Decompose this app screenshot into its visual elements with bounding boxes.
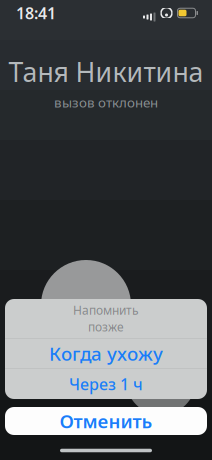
staticText: вызов отклонен <box>54 93 158 111</box>
staticText: позже <box>88 319 124 335</box>
staticText: 18:41 <box>16 2 56 24</box>
button[interactable]: Отменить <box>5 407 207 435</box>
button[interactable]: Когда ухожу <box>5 338 207 368</box>
staticText: Когда ухожу <box>49 341 163 366</box>
button[interactable]: Через 1 ч <box>5 369 207 399</box>
staticText: Через 1 ч <box>69 373 143 395</box>
staticText: Отменить <box>59 409 152 433</box>
staticText: Напомнить <box>73 302 139 318</box>
staticText: Таня Никитина <box>8 54 203 89</box>
